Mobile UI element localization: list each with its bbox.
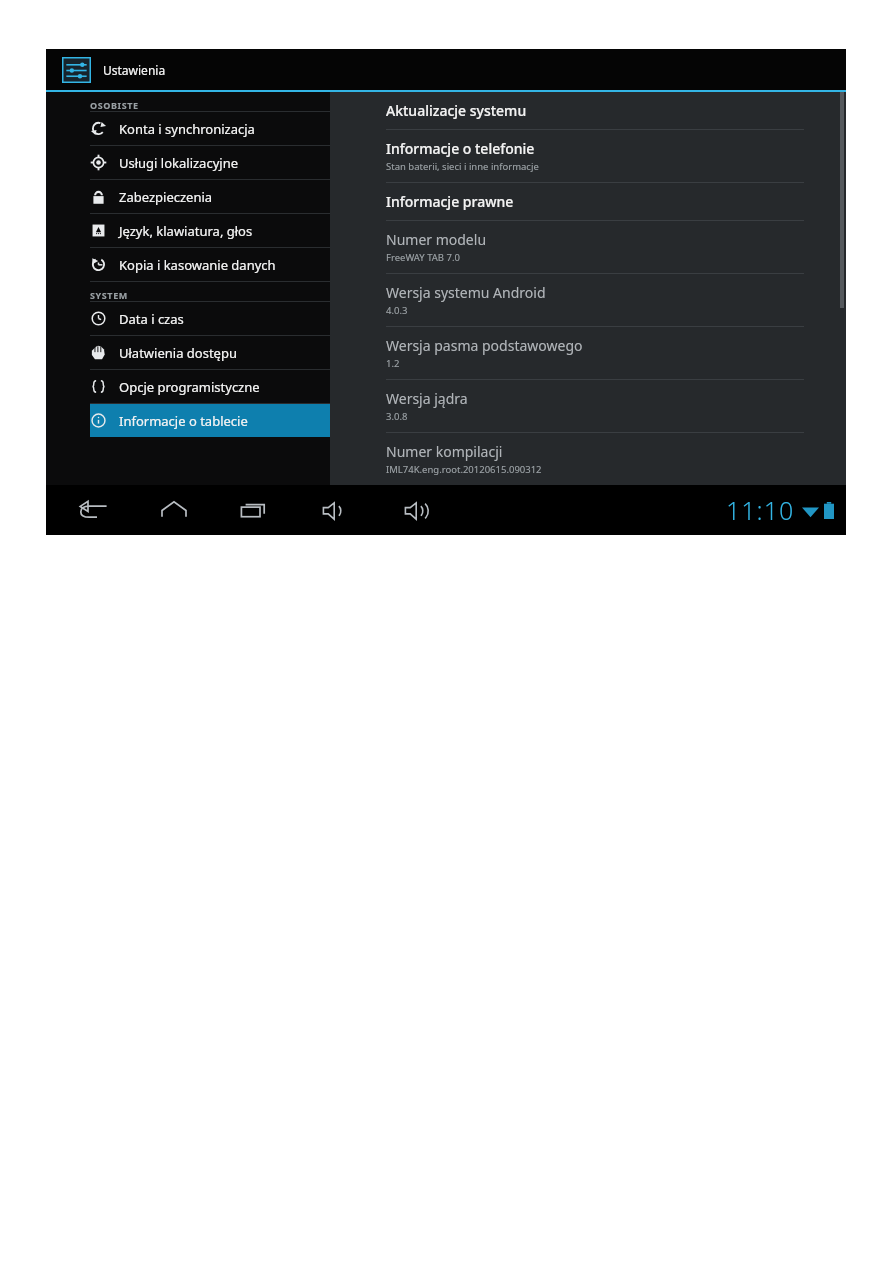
button[interactable]: Wstecz <box>74 485 114 535</box>
button[interactable]: Numer modelu <box>330 221 846 273</box>
button[interactable]: Data i czas <box>90 302 330 335</box>
button[interactable]: Informacje prawne <box>330 183 846 220</box>
staticText: IML74K.eng.root.20120615.090312 <box>386 463 542 476</box>
staticText: 4.0.3 <box>386 304 408 317</box>
staticText: Język, klawiatura, głos <box>119 222 253 240</box>
staticText: Informacje prawne <box>386 192 514 211</box>
button[interactable]: Konta i synchronizacja <box>90 112 330 145</box>
button[interactable]: Kopia i kasowanie danych <box>90 248 330 281</box>
staticText: Numer modelu <box>386 230 487 249</box>
staticText: Ustawienia <box>103 62 166 78</box>
staticText: SYSTEM <box>90 289 128 301</box>
staticText: Wersja jądra <box>386 389 468 408</box>
staticText: Kopia i kasowanie danych <box>119 256 276 274</box>
staticText: Data i czas <box>119 310 184 328</box>
button[interactable]: Ciszej <box>316 485 356 535</box>
staticText: Numer kompilacji <box>386 442 503 461</box>
staticText: Wersja systemu Android <box>386 283 546 302</box>
button[interactable]: Głośniej <box>398 485 438 535</box>
staticText: Usługi lokalizacyjne <box>119 154 239 172</box>
staticText: Informacje o telefonie <box>386 139 535 158</box>
staticText: Ułatwienia dostępu <box>119 344 237 362</box>
staticText: Opcje programistyczne <box>119 378 260 396</box>
staticText: 3.0.8 <box>386 410 408 423</box>
staticText: 1.2 <box>386 357 400 370</box>
button[interactable]: Wersja jądra <box>330 380 846 432</box>
button[interactable]: Opcje programistyczne <box>90 370 330 403</box>
staticText: Aktualizacje systemu <box>386 101 527 120</box>
button[interactable]: Numer kompilacji <box>330 433 846 485</box>
staticText: 11:10 <box>726 493 795 527</box>
button[interactable]: Zabezpieczenia <box>90 180 330 213</box>
button[interactable]: Aktualizacje systemu <box>330 92 846 129</box>
button[interactable]: Ułatwienia dostępu <box>90 336 330 369</box>
button[interactable]: Wersja pasma podstawowego <box>330 327 846 379</box>
button[interactable]: Informacje o tablecie <box>90 404 330 437</box>
button[interactable]: Wersja systemu Android <box>330 274 846 326</box>
staticText: FreeWAY TAB 7.0 <box>386 251 460 264</box>
staticText: Konta i synchronizacja <box>119 120 255 138</box>
button[interactable]: Ostatnie aplikacje <box>234 485 274 535</box>
staticText: Informacje o tablecie <box>119 412 248 430</box>
staticText: OSOBISTE <box>90 99 139 111</box>
button[interactable]: Usługi lokalizacyjne <box>90 146 330 179</box>
staticText: Zabezpieczenia <box>119 188 213 206</box>
button[interactable]: Informacje o telefonie <box>330 130 846 182</box>
button[interactable]: Ekran główny <box>154 485 194 535</box>
button[interactable]: Język, klawiatura, głos <box>90 214 330 247</box>
staticText: Wersja pasma podstawowego <box>386 336 583 355</box>
staticText: Stan baterii, sieci i inne informacje <box>386 160 539 173</box>
